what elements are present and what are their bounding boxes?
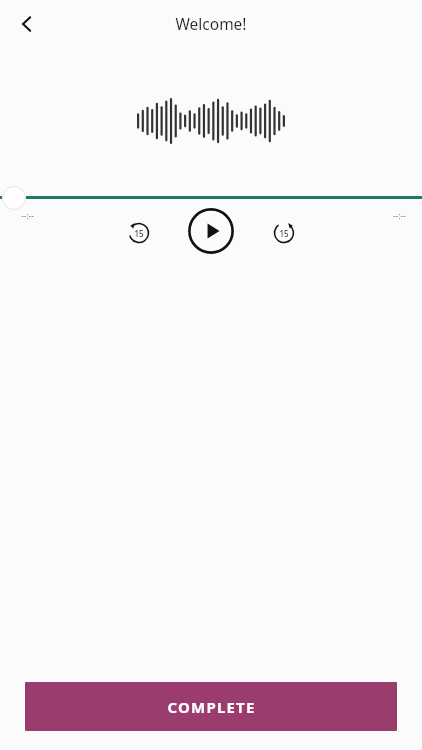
staticText: 15 <box>134 228 144 239</box>
button[interactable]: Back <box>9 6 45 42</box>
button[interactable]: Forward 15 seconds <box>264 213 304 253</box>
button[interactable]: Play <box>185 205 237 257</box>
staticText: --:-- <box>21 210 34 221</box>
staticText: --:-- <box>393 210 406 221</box>
staticText: COMPLETE <box>167 697 256 717</box>
button[interactable]: Rewind 15 seconds <box>119 213 159 253</box>
staticText: Welcome! <box>175 13 247 34</box>
button[interactable]: COMPLETE <box>25 682 397 731</box>
staticText: 15 <box>279 228 289 239</box>
